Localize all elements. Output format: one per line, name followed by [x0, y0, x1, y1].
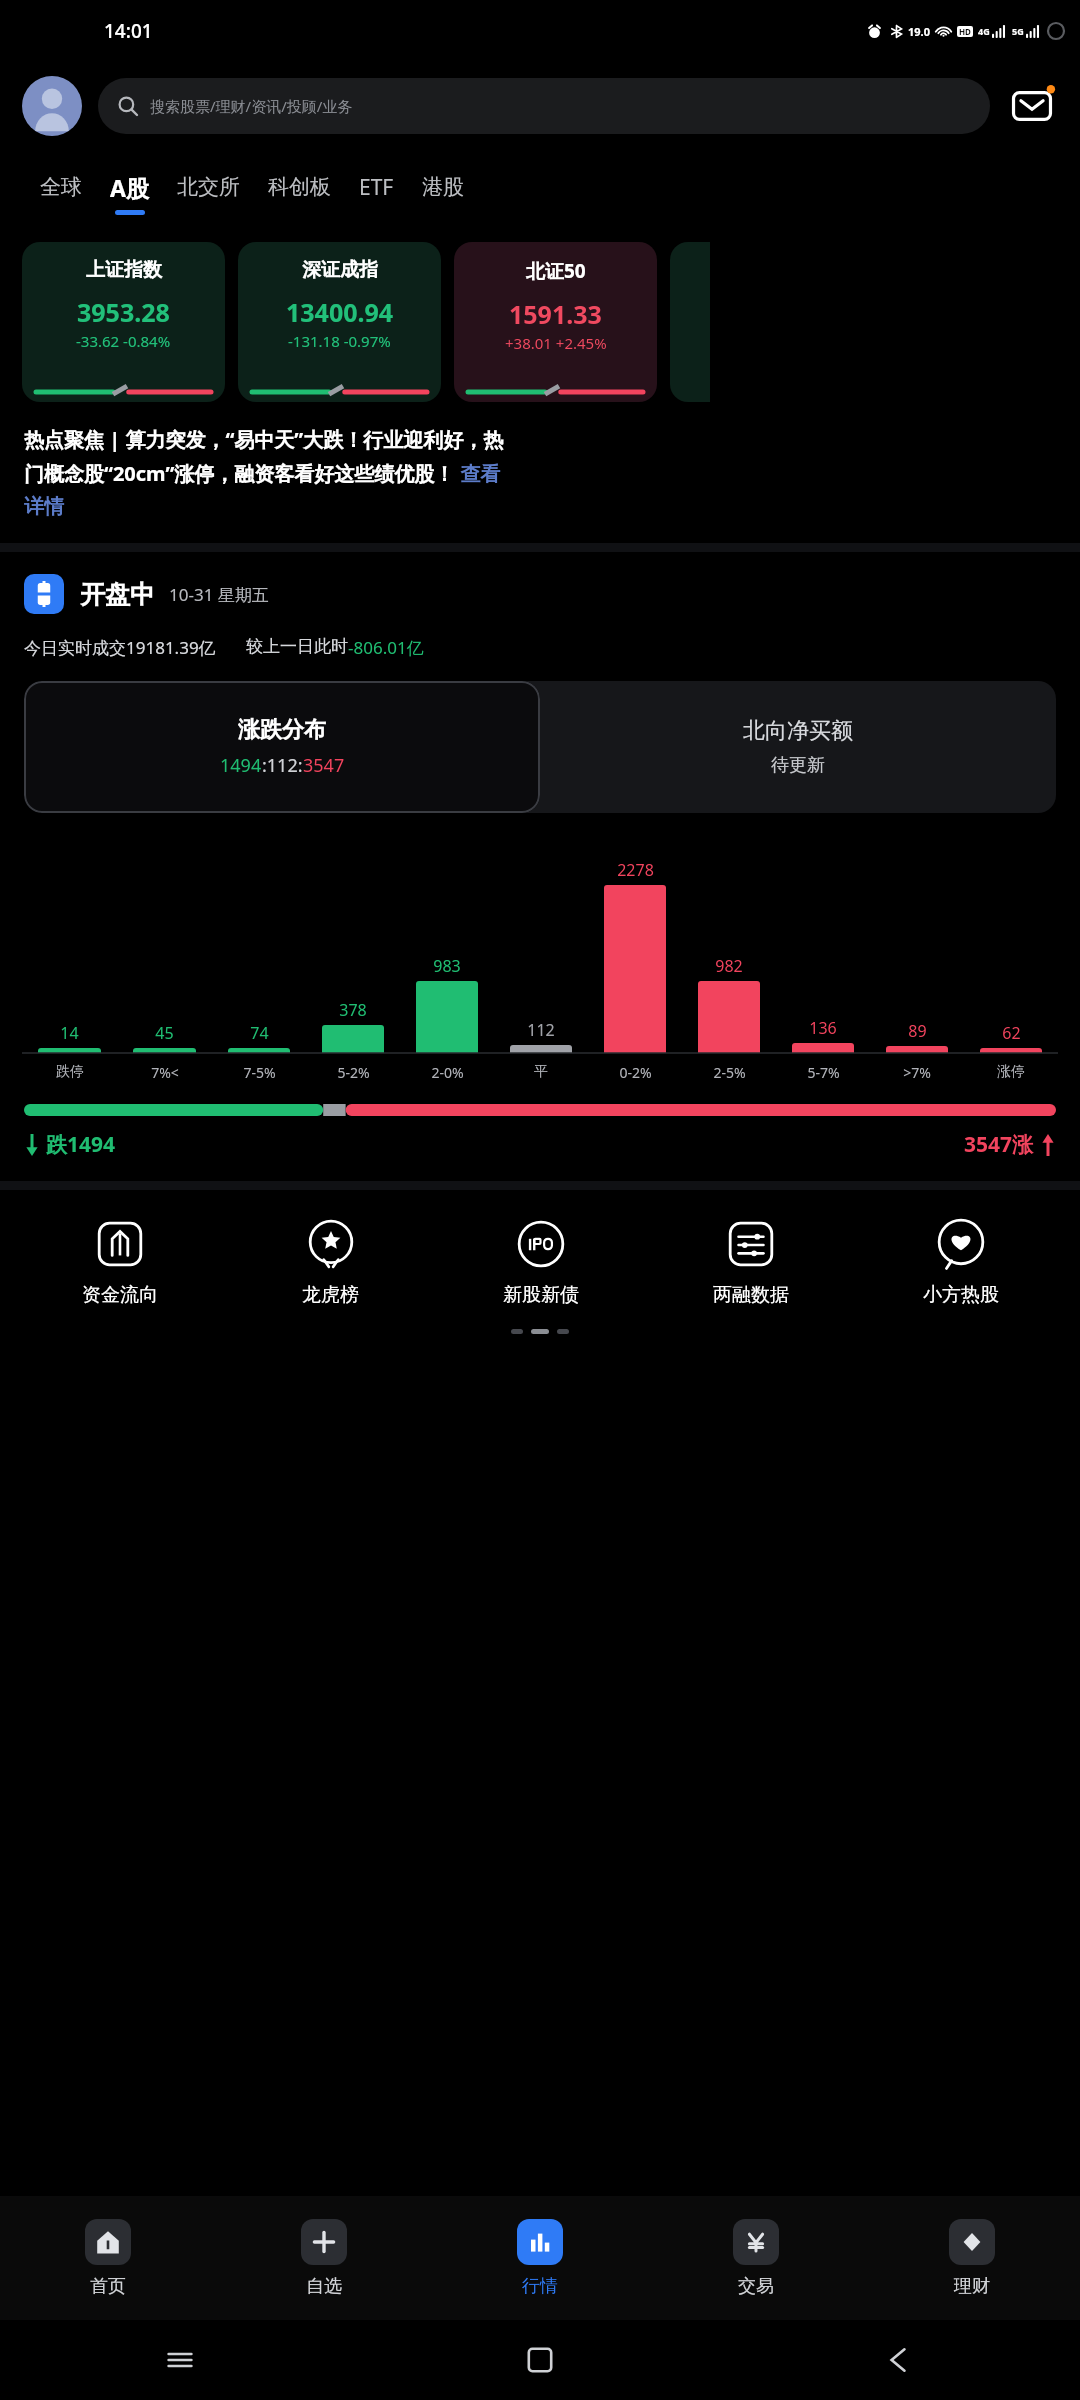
button[interactable]: 14 — [22, 1022, 117, 1053]
staticText: 983 — [433, 955, 461, 977]
staticText: 跌1494 — [46, 1130, 116, 1159]
staticText: 查看 — [455, 460, 501, 487]
button[interactable]: 北证50 — [454, 242, 657, 402]
staticText: 交易 — [738, 2275, 774, 2298]
staticText: 1494 — [220, 753, 262, 778]
staticText: -806.01亿 — [348, 636, 424, 659]
button[interactable]: 资金流向 — [14, 1218, 225, 1307]
button[interactable]: 搜索股票/理财/资讯/投顾/业务 — [98, 78, 990, 134]
staticText: -131.18 -0.97% — [288, 331, 391, 351]
button[interactable]: 北交所 — [163, 174, 254, 212]
staticText: 14:01 — [104, 18, 153, 44]
button[interactable]: 热点聚焦 | 算力突发，“易中天”大跌！行业迎利好，热 — [24, 408, 1056, 533]
button[interactable]: 理财 — [864, 2196, 1080, 2320]
button[interactable]: 首页 — [0, 2196, 216, 2320]
staticText: 平 — [534, 1063, 548, 1081]
staticText: 龙虎榜 — [302, 1283, 359, 1307]
staticText: 理财 — [954, 2275, 990, 2298]
button[interactable]: 2278 — [588, 859, 682, 1053]
button[interactable]: 112 — [494, 1019, 588, 1053]
button[interactable]: 深证成指 — [238, 242, 441, 402]
staticText: 3953.28 — [77, 295, 170, 329]
staticText: +38.01 +2.45% — [505, 333, 607, 353]
staticText: >7% — [903, 1063, 931, 1082]
staticText: 北向净买额 — [743, 717, 853, 745]
staticText: 小方热股 — [923, 1283, 999, 1307]
staticText: 5-7% — [807, 1063, 840, 1082]
button[interactable]: 74 — [212, 1022, 306, 1053]
button[interactable]: Profile — [22, 76, 82, 136]
staticText: 北交所 — [177, 174, 240, 200]
button[interactable] — [670, 242, 710, 402]
button[interactable]: A股 — [96, 172, 163, 215]
button[interactable]: 89 — [870, 1020, 964, 1053]
button[interactable]: 涨跌分布 — [24, 681, 540, 813]
button[interactable]: 港股 — [408, 174, 478, 212]
button[interactable]: Back — [720, 2320, 1080, 2400]
button[interactable]: 上证指数 — [22, 242, 225, 402]
button[interactable]: 983 — [400, 955, 494, 1053]
staticText: 5-2% — [337, 1063, 370, 1082]
staticText: 全球 — [40, 174, 82, 200]
button[interactable]: Recents — [0, 2320, 360, 2400]
staticText: 待更新 — [771, 754, 825, 777]
staticText: 两融数据 — [713, 1283, 789, 1307]
staticText: 搜索股票/理财/资讯/投顾/业务 — [150, 96, 353, 116]
button[interactable]: 自选 — [216, 2196, 432, 2320]
staticText: 新股新债 — [503, 1283, 579, 1307]
button[interactable]: 378 — [306, 999, 400, 1053]
staticText: 开盘中 — [80, 579, 155, 610]
staticText: 行情 — [522, 2275, 558, 2298]
button[interactable]: 北向净买额 — [540, 681, 1056, 813]
button[interactable]: ETF — [345, 173, 408, 214]
staticText: 热点聚焦 | 算力突发，“易中天”大跌！行业迎利好，热 — [24, 426, 504, 453]
staticText: 4G — [978, 25, 990, 37]
staticText: 上证指数 — [86, 258, 162, 282]
staticText: :112: — [262, 753, 303, 778]
staticText: 科创板 — [268, 174, 331, 200]
button[interactable]: 新股新债 — [436, 1218, 646, 1307]
button[interactable]: 科创板 — [254, 174, 345, 212]
button[interactable]: 全球 — [26, 174, 96, 212]
button[interactable]: 交易 — [648, 2196, 864, 2320]
staticText: 136 — [809, 1017, 837, 1039]
staticText: 10-31 星期五 — [169, 583, 269, 606]
staticText: 5G — [1012, 25, 1024, 37]
button[interactable]: 龙虎榜 — [225, 1218, 436, 1307]
button[interactable]: Home — [360, 2320, 720, 2400]
button[interactable]: 982 — [682, 955, 776, 1053]
button[interactable]: 两融数据 — [646, 1218, 856, 1307]
staticText: 3547 — [303, 753, 345, 778]
staticText: 378 — [339, 999, 367, 1021]
staticText: 首页 — [90, 2275, 126, 2298]
staticText: 深证成指 — [302, 258, 378, 282]
staticText: 13400.94 — [286, 295, 394, 329]
staticText: 45 — [155, 1022, 174, 1044]
button[interactable]: 136 — [776, 1017, 870, 1053]
staticText: 3547涨 — [964, 1130, 1034, 1159]
staticText: 跌停 — [56, 1063, 84, 1081]
staticText: 19.0 — [908, 24, 930, 39]
staticText: ETF — [359, 173, 394, 202]
staticText: 62 — [1002, 1022, 1021, 1044]
staticText: 涨停 — [997, 1063, 1025, 1081]
staticText: 14 — [60, 1022, 79, 1044]
staticText: 7-5% — [243, 1063, 276, 1082]
staticText: 112 — [527, 1019, 555, 1041]
staticText: 89 — [908, 1020, 927, 1042]
button[interactable]: 开盘中 — [24, 574, 1056, 614]
staticText: -33.62 -0.84% — [76, 331, 171, 351]
button[interactable]: 62 — [964, 1022, 1058, 1053]
staticText: 北证50 — [526, 258, 586, 284]
button[interactable]: Messages — [1006, 80, 1058, 132]
staticText: 74 — [250, 1022, 269, 1044]
staticText: HD — [959, 26, 971, 37]
staticText: 涨跌分布 — [238, 716, 326, 744]
button[interactable]: 45 — [117, 1022, 212, 1053]
staticText: 982 — [715, 955, 743, 977]
staticText: A股 — [110, 172, 149, 203]
button[interactable]: 小方热股 — [856, 1218, 1066, 1307]
staticText: 2-5% — [713, 1063, 746, 1082]
button[interactable]: 行情 — [432, 2196, 648, 2320]
staticText: 详情 — [24, 494, 64, 519]
